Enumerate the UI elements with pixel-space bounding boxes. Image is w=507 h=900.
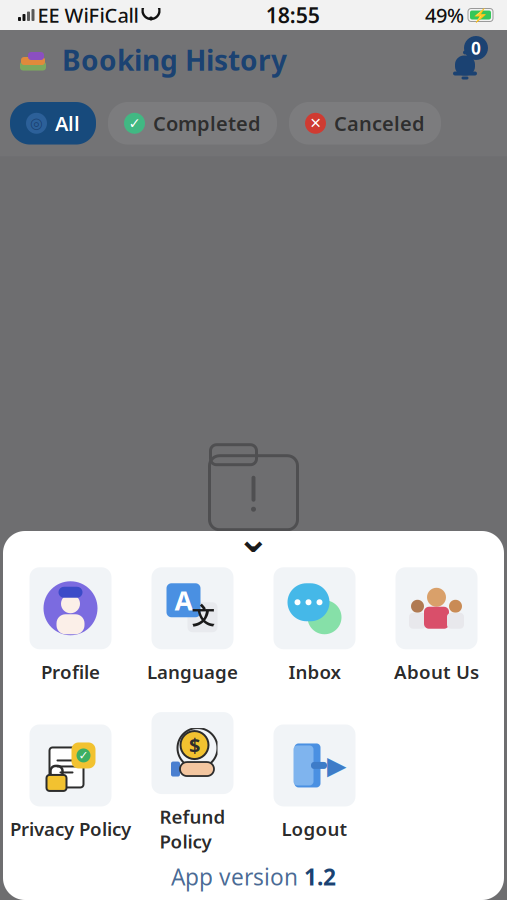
button[interactable]: ✓ <box>9 724 131 841</box>
button[interactable]: About Us <box>375 567 497 684</box>
staticText: Profile <box>41 659 100 684</box>
staticText: About Us <box>394 659 479 684</box>
staticText: 0 <box>471 36 481 59</box>
staticText: ▶ <box>327 751 346 780</box>
button[interactable]: Notifications <box>439 34 491 86</box>
staticText: App version <box>171 862 298 892</box>
staticText: ✕ <box>309 115 321 132</box>
staticText: $ <box>189 732 200 758</box>
staticText: No booking request right now. <box>87 591 420 621</box>
button[interactable]: ✓ <box>108 102 277 145</box>
button[interactable]: ▶ <box>253 724 375 841</box>
button[interactable]: ◎ <box>10 102 96 145</box>
staticText: ⚡ <box>472 7 489 23</box>
button[interactable]: App version <box>171 862 336 900</box>
button[interactable]: ✕ <box>289 102 441 145</box>
staticText: ✓ <box>128 115 140 132</box>
staticText: Privacy Policy <box>10 816 131 841</box>
staticText: ✓ <box>78 749 88 762</box>
staticText: 文 <box>192 602 215 630</box>
staticText: Logout <box>281 816 347 841</box>
button[interactable]: $ <box>131 712 253 854</box>
staticText: Canceled <box>334 110 425 137</box>
staticText: 18:55 <box>266 1 320 29</box>
staticText: Booking History <box>62 41 287 79</box>
staticText: 49% <box>425 2 464 28</box>
button[interactable]: A <box>131 567 253 684</box>
staticText: Refund Policy <box>159 804 225 854</box>
staticText: All <box>55 110 80 137</box>
staticText: Completed <box>153 110 261 137</box>
staticText: ◎ <box>30 115 43 132</box>
staticText: ⌄ <box>236 516 270 561</box>
staticText: Inbox <box>288 659 340 684</box>
staticText: Language <box>147 659 238 684</box>
button[interactable]: Close menu <box>223 523 283 551</box>
staticText: A <box>174 583 192 618</box>
staticText: 1.2 <box>304 862 336 892</box>
button[interactable]: Inbox <box>253 567 375 684</box>
staticText: EE WiFiCall <box>37 2 138 28</box>
button[interactable]: Profile <box>9 567 131 684</box>
